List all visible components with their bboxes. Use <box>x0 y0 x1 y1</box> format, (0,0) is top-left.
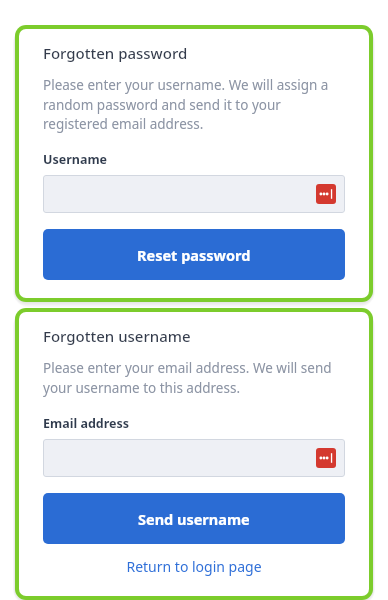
button[interactable]: Reset password <box>43 229 345 280</box>
staticText: Forgotten username <box>43 326 191 346</box>
button[interactable]: Email address <box>43 439 345 477</box>
staticText: Return to login page <box>126 557 262 576</box>
button[interactable]: Password manager <box>316 184 336 204</box>
button[interactable]: Password manager <box>316 448 336 468</box>
staticText: Username <box>43 151 108 168</box>
button[interactable]: Username <box>43 175 345 213</box>
staticText: Reset password <box>137 245 251 265</box>
staticText: Email address <box>43 415 130 432</box>
button[interactable]: Return to login page <box>43 550 345 582</box>
button[interactable]: Send username <box>43 493 345 544</box>
staticText: Forgotten password <box>43 43 188 63</box>
staticText: Please enter your username. We will assi… <box>43 76 345 133</box>
staticText: Send username <box>138 509 250 529</box>
staticText: Please enter your email address. We will… <box>43 359 345 397</box>
